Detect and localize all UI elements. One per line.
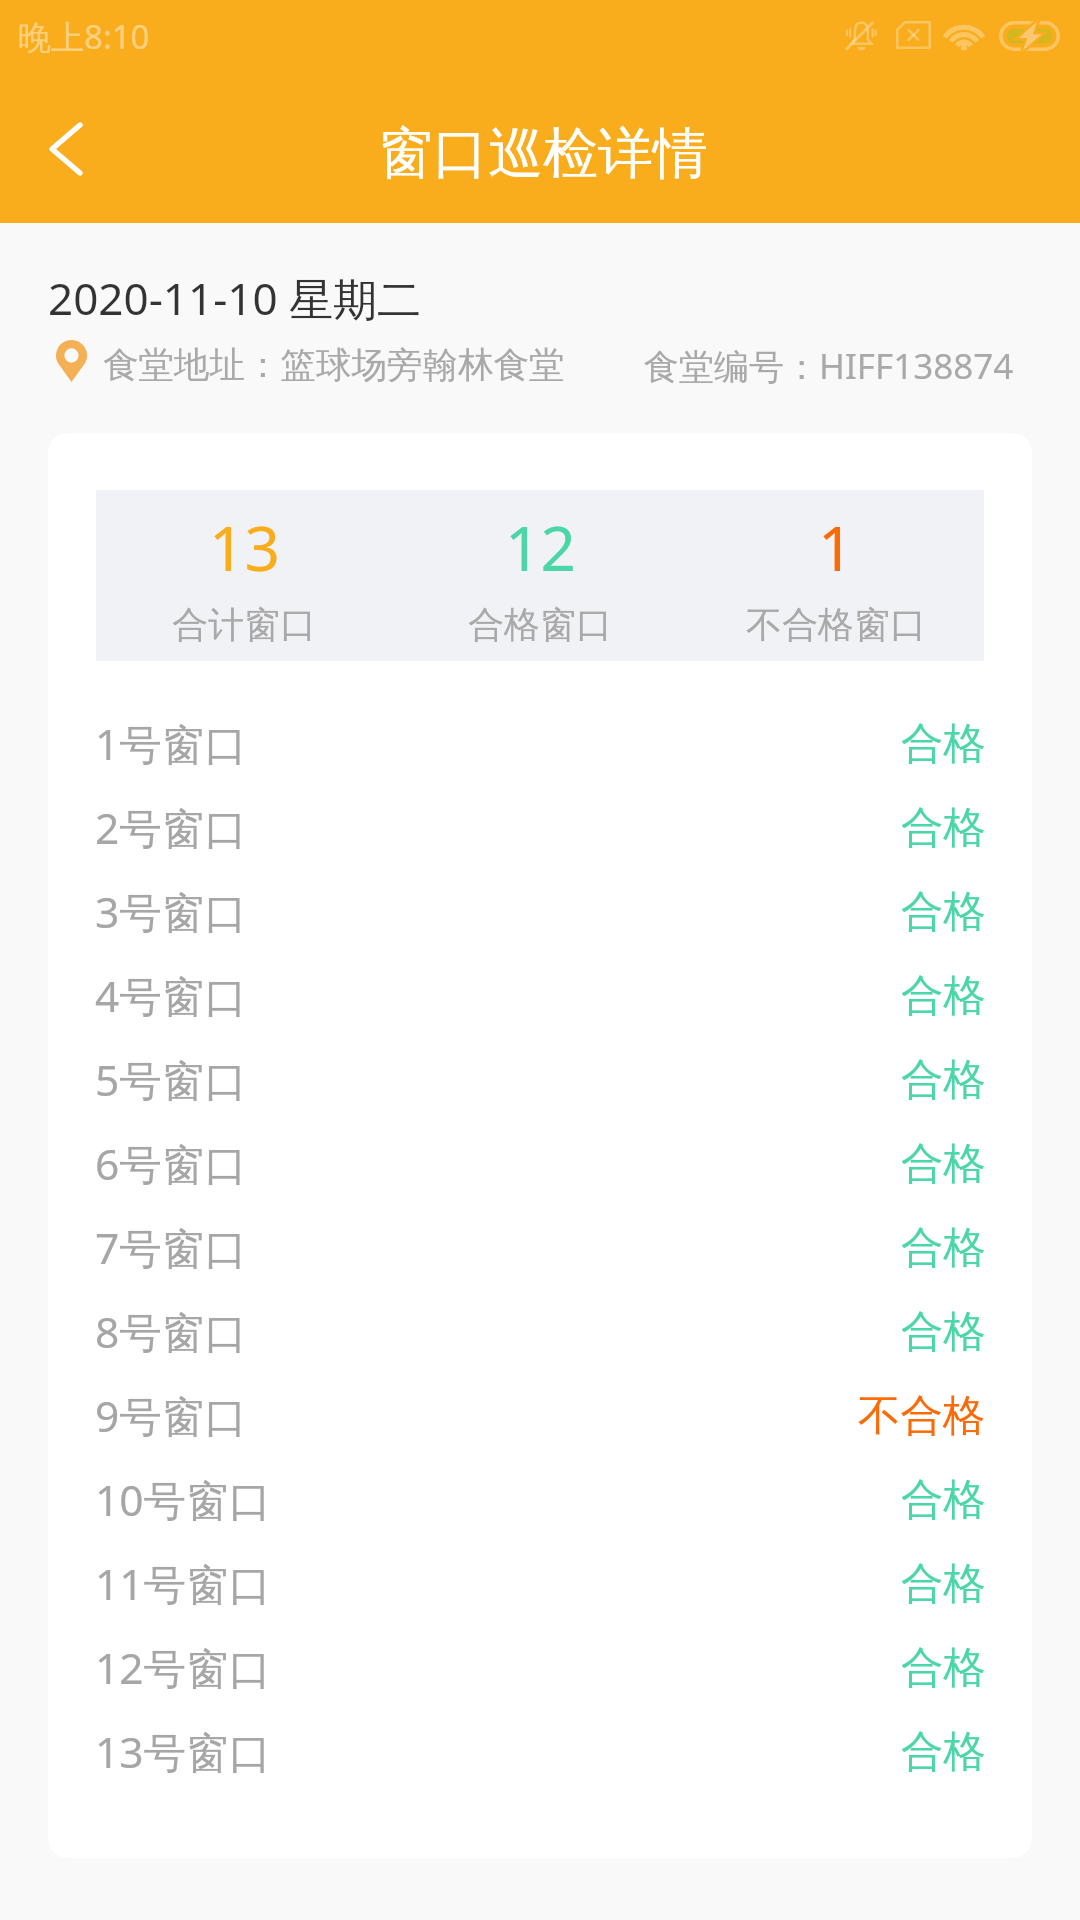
staticText: 2020-11-10 星期二	[48, 268, 422, 328]
staticText: 3号窗口	[95, 883, 247, 941]
staticText: 合格	[901, 885, 986, 939]
button[interactable]: 1	[688, 490, 984, 661]
staticText: 9号窗口	[95, 1387, 247, 1445]
button[interactable]: 4号窗口	[48, 954, 1032, 1038]
staticText: 合格	[901, 1473, 986, 1527]
button[interactable]: 2号窗口	[48, 786, 1032, 870]
staticText: 晚上8:10	[18, 14, 150, 59]
staticText: 合格	[901, 717, 986, 771]
button[interactable]: 6号窗口	[48, 1122, 1032, 1206]
staticText: 食堂地址：篮球场旁翰林食堂	[103, 343, 565, 388]
staticText: 13	[209, 505, 280, 589]
button[interactable]: 3号窗口	[48, 870, 1032, 954]
button[interactable]: 12号窗口	[48, 1626, 1032, 1710]
staticText: 5号窗口	[95, 1051, 247, 1109]
button[interactable]: Back	[30, 113, 102, 185]
staticText: 不合格	[858, 1389, 986, 1443]
staticText: 12	[505, 505, 576, 589]
staticText: 1	[818, 505, 854, 589]
staticText: 1号窗口	[95, 715, 247, 773]
button[interactable]: 12	[392, 490, 688, 661]
staticText: 合格窗口	[468, 602, 612, 647]
staticText: 合格	[901, 1305, 986, 1359]
staticText: 食堂编号：HIFF138874	[644, 342, 1014, 390]
staticText: 10号窗口	[95, 1471, 272, 1529]
staticText: 8号窗口	[95, 1303, 247, 1361]
button[interactable]: 13号窗口	[48, 1710, 1032, 1794]
staticText: 13号窗口	[95, 1723, 272, 1781]
staticText: 7号窗口	[95, 1219, 247, 1277]
staticText: 不合格窗口	[746, 602, 926, 647]
staticText: 6号窗口	[95, 1135, 247, 1193]
button[interactable]: 1号窗口	[48, 702, 1032, 786]
button[interactable]: 8号窗口	[48, 1290, 1032, 1374]
button[interactable]: 9号窗口	[48, 1374, 1032, 1458]
button[interactable]: 5号窗口	[48, 1038, 1032, 1122]
staticText: 4号窗口	[95, 967, 247, 1025]
button[interactable]: 7号窗口	[48, 1206, 1032, 1290]
staticText: 窗口巡检详情	[378, 119, 708, 188]
staticText: 合格	[901, 1557, 986, 1611]
staticText: 2号窗口	[95, 799, 247, 857]
staticText: 合格	[901, 1725, 986, 1779]
staticText: 合格	[901, 1641, 986, 1695]
button[interactable]: 11号窗口	[48, 1542, 1032, 1626]
staticText: 合格	[901, 1137, 986, 1191]
button[interactable]: 13	[96, 490, 392, 661]
staticText: 合格	[901, 1221, 986, 1275]
staticText: 12号窗口	[95, 1639, 272, 1697]
staticText: 合格	[901, 969, 986, 1023]
staticText: 合格	[901, 801, 986, 855]
staticText: 11号窗口	[95, 1555, 272, 1613]
staticText: 合格	[901, 1053, 986, 1107]
staticText: 合计窗口	[172, 602, 316, 647]
button[interactable]: 10号窗口	[48, 1458, 1032, 1542]
